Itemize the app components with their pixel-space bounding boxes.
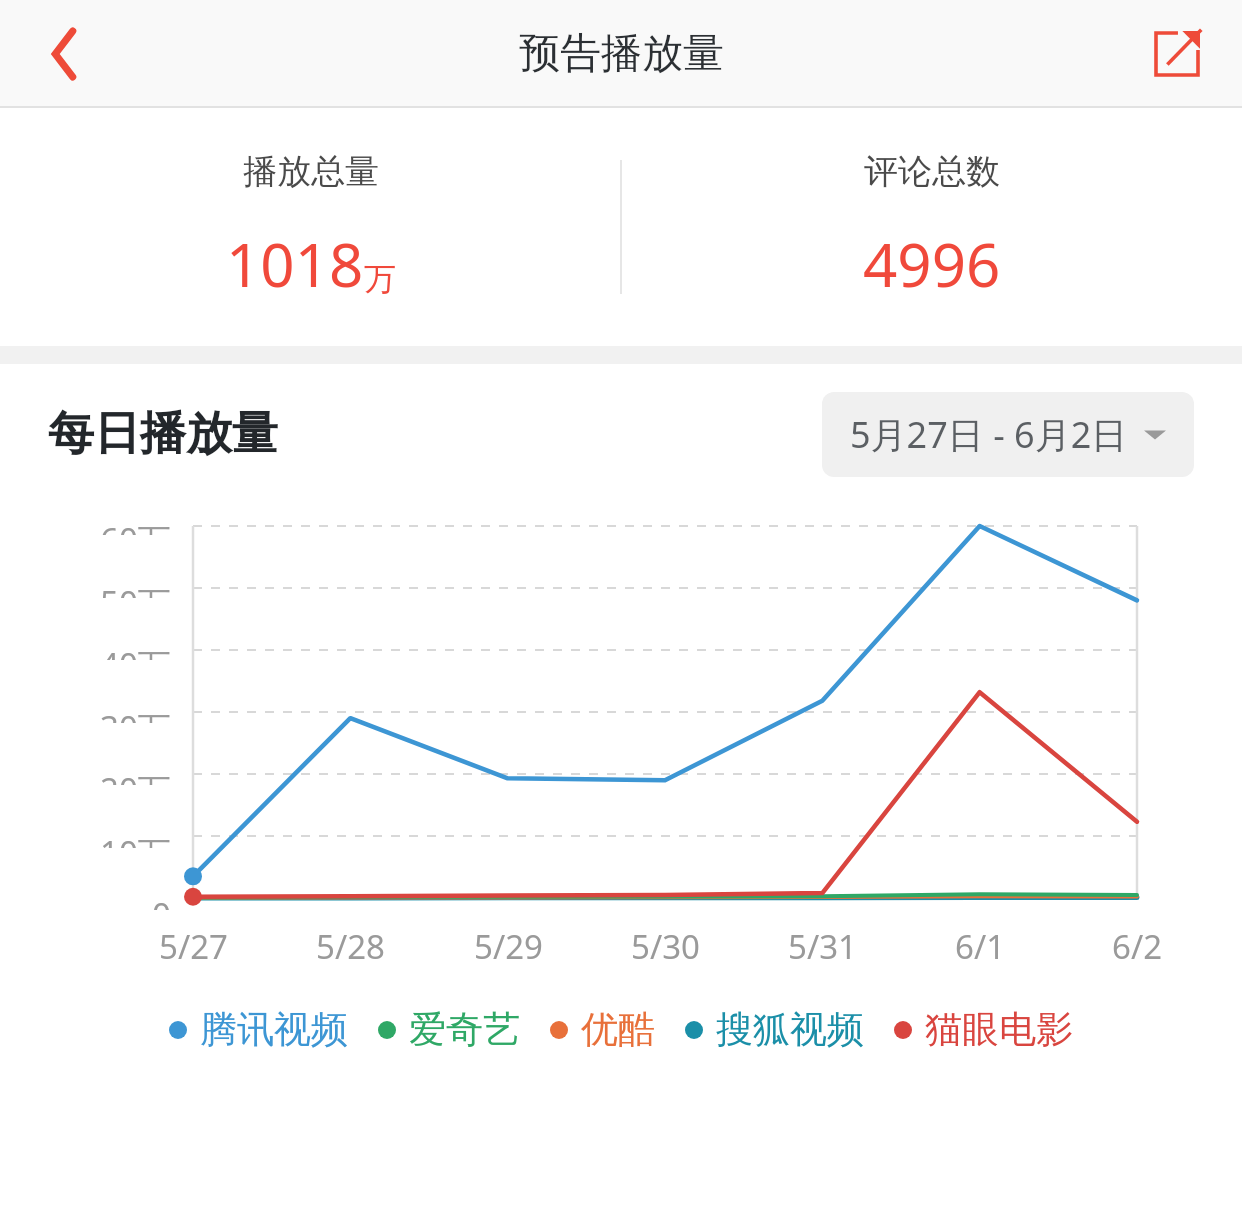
button[interactable]: 优酷 xyxy=(537,1006,668,1053)
button[interactable]: 爱奇艺 xyxy=(365,1006,533,1053)
button[interactable]: 猫眼电影 xyxy=(881,1006,1086,1053)
staticText: 60万 xyxy=(100,517,171,535)
staticText: 5/31 xyxy=(788,924,857,969)
staticText: 1018 xyxy=(226,223,364,305)
staticText: 猫眼电影 xyxy=(925,1006,1073,1053)
staticText: 40万 xyxy=(100,642,171,660)
staticText: 6/2 xyxy=(1112,924,1163,969)
staticText: 10万 xyxy=(100,830,171,848)
staticText: 腾讯视频 xyxy=(200,1006,348,1053)
staticText: 5/27 xyxy=(159,924,228,969)
button[interactable]: 播放总量 xyxy=(0,108,621,346)
staticText: 优酷 xyxy=(581,1006,655,1053)
button[interactable]: 评论总数 xyxy=(621,108,1242,346)
staticText: 每日播放量 xyxy=(48,405,278,463)
button[interactable]: 搜狐视频 xyxy=(672,1006,877,1053)
staticText: 爱奇艺 xyxy=(409,1006,520,1053)
staticText: 播放总量 xyxy=(243,150,379,193)
button[interactable]: Share xyxy=(1134,11,1220,97)
staticText: 5/29 xyxy=(474,924,543,969)
staticText: 万 xyxy=(364,259,396,299)
staticText: 6/1 xyxy=(955,924,1006,969)
staticText: 20万 xyxy=(100,767,171,785)
staticText: 5/28 xyxy=(316,924,385,969)
staticText: 30万 xyxy=(100,705,171,723)
staticText: 5月27日 - 6月2日 xyxy=(850,410,1128,459)
staticText: 评论总数 xyxy=(864,150,1000,193)
staticText: 4996 xyxy=(863,223,1001,305)
button[interactable]: 5月27日 - 6月2日 xyxy=(822,392,1194,477)
staticText: 搜狐视频 xyxy=(716,1006,864,1053)
staticText: 50万 xyxy=(100,580,171,598)
button[interactable]: 腾讯视频 xyxy=(156,1006,361,1053)
staticText: 5/30 xyxy=(631,924,700,969)
staticText: 0 xyxy=(152,892,171,910)
staticText: 预告播放量 xyxy=(519,28,724,80)
button[interactable]: Back xyxy=(20,10,108,98)
